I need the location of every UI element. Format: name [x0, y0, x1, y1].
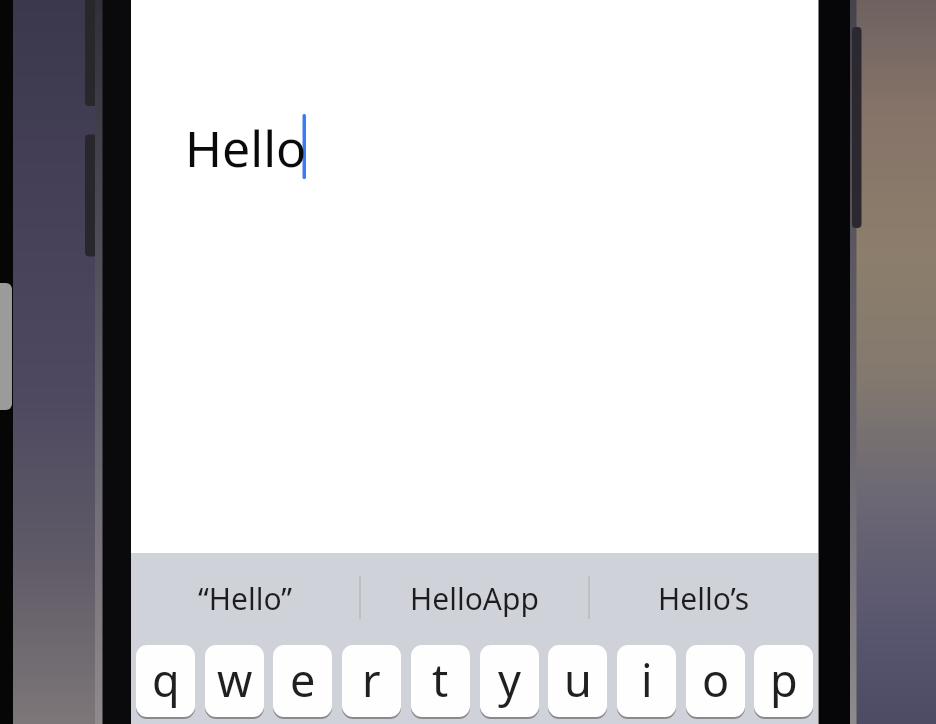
button[interactable]: “Hello”	[131, 556, 360, 640]
staticText: o	[702, 649, 730, 710]
button[interactable]: w	[205, 645, 264, 717]
staticText: e	[290, 649, 316, 710]
staticText: y	[498, 649, 521, 710]
button[interactable]: u	[548, 645, 607, 717]
staticText: r	[362, 649, 381, 710]
button[interactable]: y	[480, 645, 539, 717]
staticText: u	[564, 649, 592, 710]
button[interactable]: Hello	[131, 0, 818, 553]
button[interactable]: t	[411, 645, 470, 717]
staticText: q	[152, 649, 180, 710]
staticText: t	[432, 649, 449, 710]
staticText: “Hello”	[198, 578, 293, 619]
button[interactable]: Hello’s	[589, 556, 818, 640]
staticText: i	[641, 649, 653, 710]
button[interactable]: p	[754, 645, 813, 717]
button[interactable]: r	[342, 645, 401, 717]
staticText: w	[217, 649, 253, 710]
button[interactable]: q	[136, 645, 195, 717]
staticText: HelloApp	[410, 578, 539, 619]
staticText: Hello’s	[658, 578, 750, 619]
staticText: p	[770, 649, 798, 710]
button[interactable]: o	[686, 645, 745, 717]
button[interactable]: HelloApp	[360, 556, 589, 640]
staticText: Hello	[185, 114, 307, 182]
button[interactable]: i	[617, 645, 676, 717]
button[interactable]: e	[273, 645, 332, 717]
